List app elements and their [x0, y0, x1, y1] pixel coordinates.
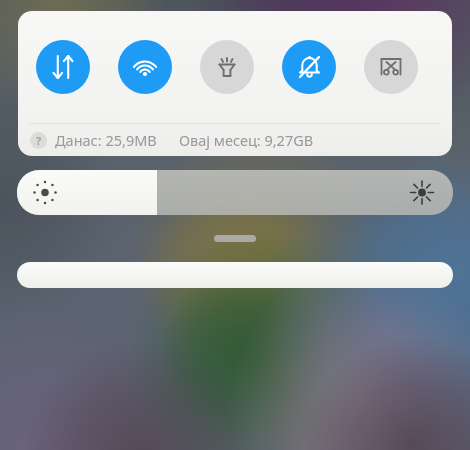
staticText: Овај месец: 9,27GB [179, 130, 314, 150]
button[interactable]: Mobile data [36, 40, 90, 94]
button[interactable]: Wi-Fi [118, 40, 172, 94]
button[interactable]: Silent mode [282, 40, 336, 94]
button[interactable]: Flashlight [200, 40, 254, 94]
button[interactable]: Brightness [17, 170, 453, 215]
staticText: ? [36, 133, 42, 148]
button[interactable]: ? [18, 124, 452, 156]
button[interactable]: Screenshot [364, 40, 418, 94]
staticText: Данас: 25,9MB [55, 130, 157, 150]
button[interactable]: Notification placeholder [17, 262, 453, 288]
button[interactable]: Expand quick settings [214, 235, 256, 242]
